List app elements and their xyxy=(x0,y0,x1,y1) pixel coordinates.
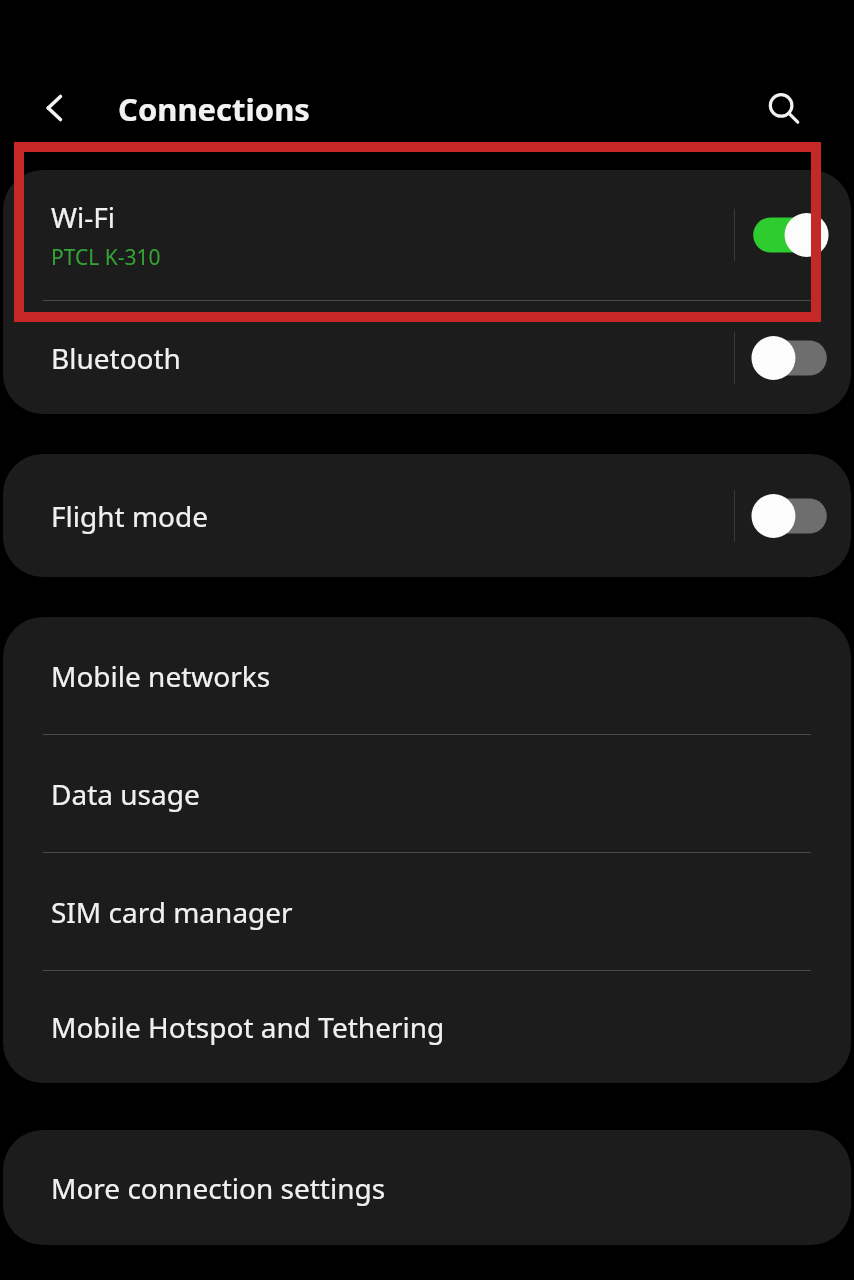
button[interactable]: Data usage xyxy=(3,735,851,852)
button[interactable]: Flight mode xyxy=(3,454,851,577)
staticText: Connections xyxy=(118,88,310,130)
button[interactable]: Bluetooth switch xyxy=(735,301,845,414)
staticText: Mobile Hotspot and Tethering xyxy=(51,1008,445,1046)
button[interactable]: Search xyxy=(756,81,812,137)
button[interactable]: Back xyxy=(30,83,80,133)
staticText: Wi-Fi xyxy=(51,198,116,236)
button[interactable]: More connection settings xyxy=(3,1130,851,1245)
button[interactable]: SIM card manager xyxy=(3,853,851,970)
button[interactable]: Flight mode switch xyxy=(735,454,845,577)
button[interactable]: Mobile networks xyxy=(3,617,851,734)
staticText: Bluetooth xyxy=(51,339,181,377)
staticText: Data usage xyxy=(51,775,200,813)
staticText: SIM card manager xyxy=(51,893,293,931)
button[interactable]: Wi-Fi xyxy=(3,170,851,300)
button[interactable]: Bluetooth xyxy=(3,301,851,414)
staticText: More connection settings xyxy=(51,1169,386,1207)
staticText: PTCL K-310 xyxy=(51,243,161,272)
staticText: Flight mode xyxy=(51,497,209,535)
button[interactable]: Mobile Hotspot and Tethering xyxy=(3,971,851,1083)
button[interactable]: Wi-Fi switch xyxy=(735,170,845,300)
staticText: Mobile networks xyxy=(51,657,271,695)
